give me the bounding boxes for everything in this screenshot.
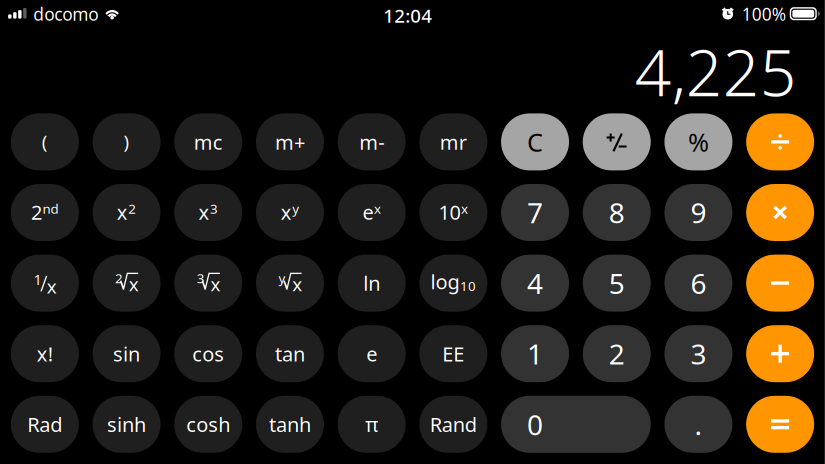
button[interactable]: % <box>664 113 732 170</box>
button[interactable]: 2 <box>583 325 651 382</box>
button[interactable]: Equals <box>746 396 814 453</box>
staticText: 100% <box>742 3 786 26</box>
button[interactable]: one over x <box>11 255 79 312</box>
staticText: log <box>431 268 460 295</box>
button[interactable]: tanh <box>256 396 324 453</box>
staticText: x! <box>37 340 53 367</box>
staticText: Rad <box>27 411 62 438</box>
staticText: e <box>362 199 373 225</box>
button[interactable]: Divide <box>746 113 814 170</box>
button[interactable]: ln <box>338 255 406 312</box>
button[interactable]: sinh <box>92 396 160 453</box>
button[interactable]: x! <box>11 325 79 382</box>
button[interactable]: mc <box>174 113 242 170</box>
button[interactable]: ex <box>338 184 406 241</box>
button[interactable]: 3 <box>664 325 732 382</box>
staticText: cos <box>192 340 224 367</box>
button[interactable]: 10x <box>419 184 487 241</box>
staticText: x <box>129 271 139 296</box>
staticText: 10 <box>460 277 476 295</box>
staticText: x <box>47 274 57 299</box>
staticText: 3 <box>690 335 706 372</box>
button[interactable]: 1 <box>501 325 569 382</box>
button[interactable]: 7 <box>501 184 569 241</box>
button[interactable]: 2 root of x <box>93 255 161 312</box>
staticText: x <box>461 200 468 217</box>
staticText: mc <box>194 129 223 155</box>
button[interactable]: Add <box>746 325 814 382</box>
staticText: 2 <box>128 200 136 217</box>
staticText: ) <box>124 129 130 154</box>
staticText: 1 <box>527 335 543 372</box>
staticText: 12:04 <box>383 3 432 28</box>
button[interactable]: . <box>664 396 732 453</box>
staticText: % <box>688 125 709 159</box>
staticText: x <box>210 271 220 296</box>
button[interactable]: Subtract <box>746 255 814 312</box>
staticText: docomo <box>33 3 98 26</box>
staticText: 4,225 <box>635 29 797 114</box>
button[interactable]: Multiply <box>746 184 814 241</box>
button[interactable]: cos <box>174 325 242 382</box>
button[interactable]: 0 <box>501 396 651 453</box>
button[interactable]: x3 <box>174 184 242 241</box>
staticText: π <box>365 411 378 438</box>
staticText: 7 <box>527 194 543 231</box>
button[interactable]: m- <box>338 113 406 170</box>
staticText: x <box>117 199 128 225</box>
button[interactable]: 9 <box>664 184 732 241</box>
staticText: mr <box>440 129 467 155</box>
button[interactable]: e <box>338 325 406 382</box>
button[interactable]: 3 root of x <box>174 255 242 312</box>
button[interactable]: π <box>338 396 406 453</box>
button[interactable]: Plus or minus <box>583 113 651 170</box>
staticText: e <box>366 340 377 367</box>
staticText: 6 <box>690 264 706 302</box>
staticText: 0 <box>527 406 543 443</box>
button[interactable]: log10 <box>419 255 487 312</box>
staticText: 5 <box>609 264 625 302</box>
button[interactable]: cosh <box>174 396 242 453</box>
button[interactable]: mr <box>419 113 487 170</box>
staticText: tanh <box>269 411 311 438</box>
button[interactable]: y root of x <box>256 255 324 312</box>
staticText: m+ <box>275 129 305 155</box>
button[interactable]: Rad <box>11 396 79 453</box>
staticText: nd <box>43 200 59 217</box>
button[interactable]: xy <box>256 184 324 241</box>
staticText: tan <box>275 340 305 367</box>
button[interactable]: sin <box>93 325 161 382</box>
staticText: x <box>292 271 302 296</box>
button[interactable]: ) <box>93 113 161 170</box>
button[interactable]: x2 <box>93 184 161 241</box>
button[interactable]: tan <box>256 325 324 382</box>
button[interactable]: C <box>501 113 569 170</box>
button[interactable]: 6 <box>664 255 732 312</box>
staticText: x <box>374 200 381 217</box>
button[interactable]: 2nd <box>11 184 79 241</box>
staticText: 10 <box>439 199 461 225</box>
staticText: 4 <box>527 264 543 302</box>
button[interactable]: m+ <box>256 113 324 170</box>
button[interactable]: 4 <box>501 255 569 312</box>
staticText: ln <box>363 270 380 296</box>
staticText: EE <box>442 340 464 367</box>
staticText: x <box>281 199 292 225</box>
staticText: cosh <box>186 411 230 438</box>
staticText: 1 <box>34 269 42 289</box>
staticText: 2 <box>609 335 625 372</box>
staticText: 8 <box>609 194 625 231</box>
button[interactable]: EE <box>419 325 487 382</box>
button[interactable]: 5 <box>583 255 651 312</box>
staticText: 3 <box>197 269 205 287</box>
staticText: m- <box>359 129 384 155</box>
staticText: sinh <box>107 411 146 438</box>
button[interactable]: 8 <box>583 184 651 241</box>
staticText: 9 <box>690 194 706 231</box>
button[interactable]: ( <box>11 113 79 170</box>
staticText: 2 <box>31 199 42 225</box>
staticText: 3 <box>210 200 218 217</box>
staticText: . <box>694 406 702 443</box>
staticText: y <box>278 269 285 287</box>
button[interactable]: Rand <box>419 396 487 453</box>
